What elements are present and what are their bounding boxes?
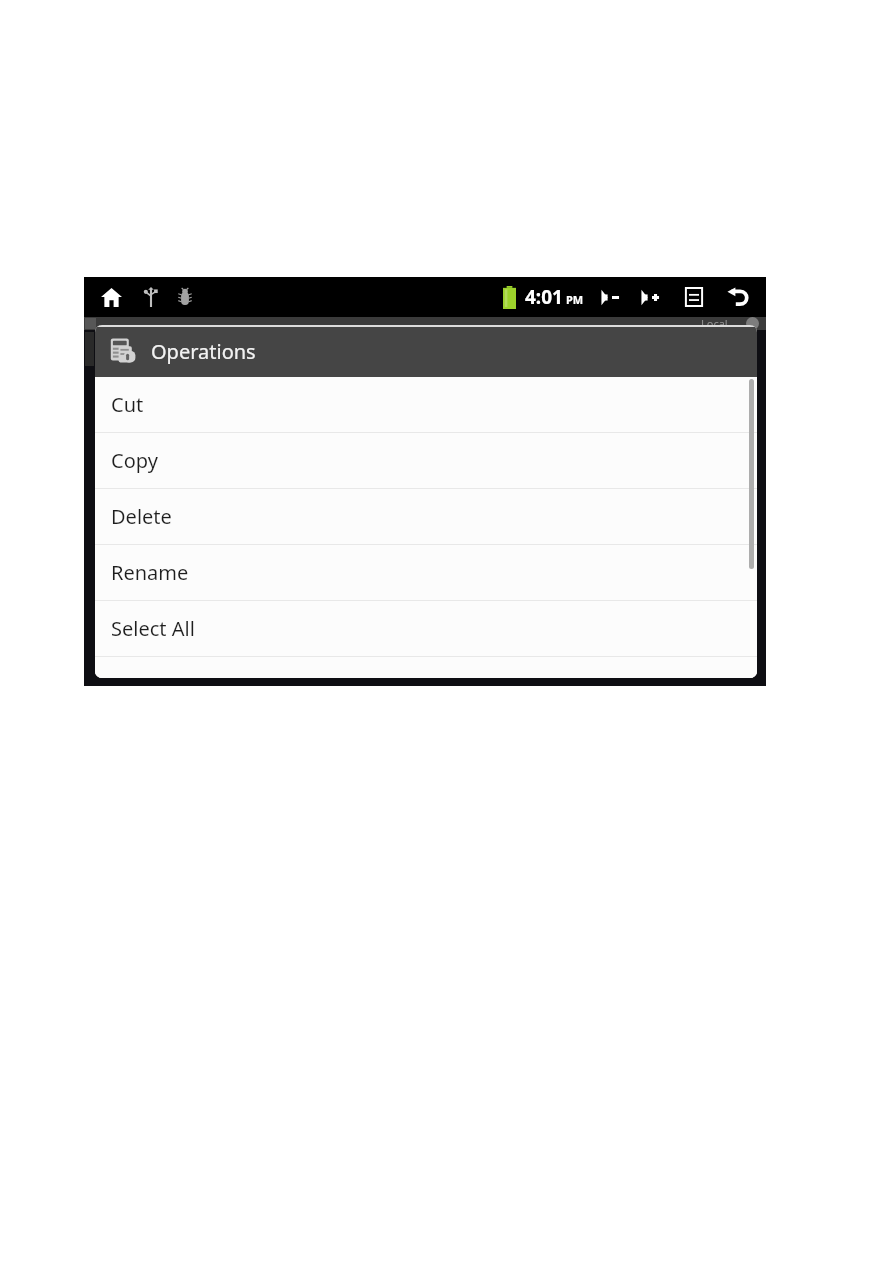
button[interactable]: Copy (95, 433, 757, 488)
button[interactable]: Back (722, 281, 754, 313)
staticText: 4:01 (525, 284, 563, 310)
button[interactable]: Home (96, 282, 126, 312)
staticText: Local (701, 316, 728, 331)
staticText: Operations (151, 338, 256, 365)
button[interactable]: Menu (678, 281, 710, 313)
button[interactable]: Rename (95, 545, 757, 600)
staticText: Rename (111, 559, 189, 586)
button[interactable]: Volume down (596, 281, 628, 313)
button[interactable]: Volume up (636, 281, 668, 313)
staticText: Cut (111, 391, 144, 418)
staticText: Select All (111, 615, 195, 642)
button[interactable]: Delete (95, 489, 757, 544)
staticText: Copy (111, 447, 158, 474)
button[interactable]: Select All (95, 601, 757, 656)
staticText: PM (566, 292, 584, 307)
button[interactable] (95, 657, 757, 678)
staticText: Delete (111, 503, 172, 530)
button[interactable]: Cut (95, 377, 757, 432)
